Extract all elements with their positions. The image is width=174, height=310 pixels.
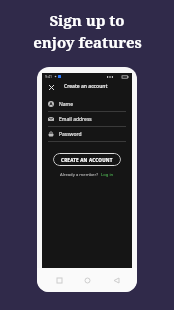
button[interactable]: Name <box>42 97 132 111</box>
button[interactable]: Close <box>46 82 56 92</box>
staticText: Create an account <box>64 83 108 90</box>
button[interactable]: Recent apps <box>52 273 66 287</box>
staticText: 9:41 <box>45 74 52 79</box>
button[interactable]: Password <box>42 127 132 141</box>
staticText: Already a member? <box>60 172 99 178</box>
button[interactable]: Back <box>109 273 123 287</box>
button[interactable]: Log in <box>101 172 114 178</box>
button[interactable]: Home <box>80 273 94 287</box>
staticText: Password <box>59 131 82 138</box>
button[interactable]: CREATE AN ACCOUNT <box>53 153 121 166</box>
staticText: Name <box>59 101 74 108</box>
staticText: Email address <box>59 116 92 123</box>
staticText: Sign up to <box>49 10 125 30</box>
staticText: CREATE AN ACCOUNT <box>61 157 113 163</box>
button[interactable]: Email address <box>42 112 132 126</box>
staticText: Log in <box>101 172 114 178</box>
staticText: enjoy features <box>33 32 142 52</box>
